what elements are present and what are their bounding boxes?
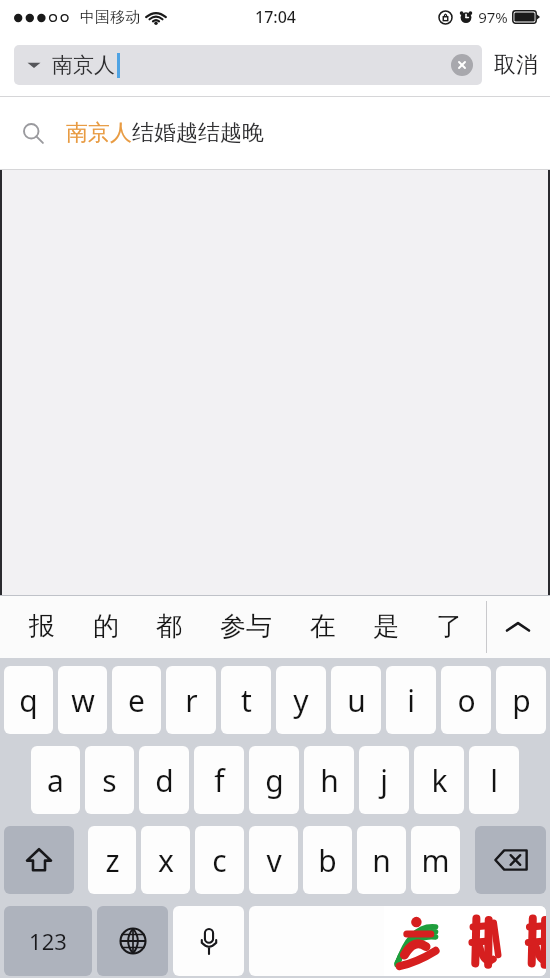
staticText: q [19, 680, 38, 721]
button[interactable]: 是 [354, 595, 417, 658]
staticText: 中国移动 [80, 8, 140, 27]
staticText: w [71, 680, 95, 721]
staticText: 在 [310, 610, 336, 643]
button[interactable]: h [304, 746, 354, 814]
button[interactable]: k [414, 746, 464, 814]
button[interactable]: a [31, 746, 80, 814]
button[interactable]: Switch keyboard [97, 906, 168, 976]
staticText: 报 [29, 610, 55, 643]
staticText: a [47, 760, 64, 801]
button[interactable]: Clear text [451, 54, 473, 76]
staticText: x [158, 840, 174, 881]
button[interactable]: n [357, 826, 406, 894]
button[interactable]: j [359, 746, 409, 814]
button[interactable]: p [496, 666, 546, 734]
staticText: b [318, 840, 337, 881]
button[interactable]: d [139, 746, 189, 814]
staticText: i [407, 680, 415, 721]
button[interactable]: 在 [291, 595, 354, 658]
button[interactable]: Expand candidates [486, 595, 550, 658]
button[interactable]: i [386, 666, 436, 734]
button[interactable]: 参与 [200, 595, 291, 658]
button[interactable]: c [195, 826, 244, 894]
staticText: 97% [478, 7, 508, 27]
button[interactable]: l [469, 746, 519, 814]
button[interactable]: y [276, 666, 326, 734]
staticText: f [214, 760, 225, 801]
button[interactable]: x [141, 826, 190, 894]
staticText: 了 [436, 610, 462, 643]
staticText: 的 [93, 610, 119, 643]
staticText: 南京人 [52, 52, 115, 78]
staticText: n [372, 840, 391, 881]
button[interactable]: 都 [137, 595, 200, 658]
staticText: g [265, 760, 284, 801]
staticText: c [212, 840, 227, 881]
staticText: h [320, 760, 339, 801]
button[interactable]: 南京人 [14, 45, 482, 85]
button[interactable]: 123 [4, 906, 92, 976]
button[interactable]: Delete [475, 826, 546, 894]
button[interactable]: 了 [417, 595, 480, 658]
button[interactable]: r [166, 666, 216, 734]
staticText: p [512, 680, 531, 721]
button[interactable]: q [4, 666, 53, 734]
staticText: weibo.com/Jin [429, 941, 542, 964]
button[interactable]: m [411, 826, 460, 894]
staticText: 南京人结婚越结越晚 [66, 119, 264, 147]
staticText: o [457, 680, 476, 721]
staticText: s [102, 760, 117, 801]
button[interactable]: e [112, 666, 161, 734]
staticText: e [128, 680, 145, 721]
button[interactable]: u [331, 666, 381, 734]
staticText: r [185, 680, 198, 721]
staticText: 参与 [220, 610, 272, 643]
button[interactable]: 的 [74, 595, 137, 658]
staticText: 17:04 [255, 6, 296, 28]
staticText: t [241, 680, 252, 721]
button[interactable]: 取消 [482, 34, 550, 96]
button[interactable]: @陈鎏枫 [249, 906, 546, 976]
staticText: 123 [29, 926, 67, 956]
staticText: j [380, 760, 388, 801]
button[interactable]: Voice input [173, 906, 244, 976]
staticText: z [105, 840, 120, 881]
button[interactable]: 报 [10, 595, 74, 658]
button[interactable]: w [58, 666, 107, 734]
staticText: v [266, 840, 282, 881]
staticText: 取消 [494, 51, 538, 79]
button[interactable]: g [249, 746, 299, 814]
staticText: @陈鎏枫 [475, 918, 542, 941]
button[interactable]: z [88, 826, 136, 894]
staticText: m [421, 840, 450, 881]
button[interactable]: t [221, 666, 271, 734]
staticText: u [347, 680, 366, 721]
staticText: 是 [373, 610, 399, 643]
button[interactable]: Shift [4, 826, 74, 894]
staticText: y [293, 680, 309, 721]
button[interactable]: o [441, 666, 491, 734]
button[interactable]: b [303, 826, 352, 894]
button[interactable]: v [249, 826, 298, 894]
button[interactable]: f [194, 746, 244, 814]
staticText: l [490, 760, 498, 801]
button[interactable]: s [85, 746, 134, 814]
button[interactable]: 南京人结婚越结越晚 [0, 97, 550, 169]
staticText: k [431, 760, 448, 801]
staticText: 都 [156, 610, 182, 643]
staticText: d [155, 760, 174, 801]
